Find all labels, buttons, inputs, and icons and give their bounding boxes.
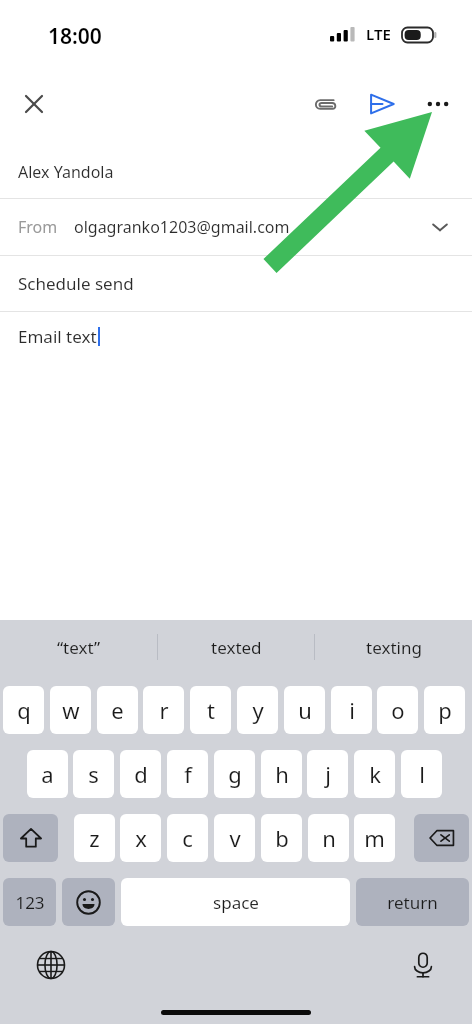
button[interactable]: r [143,686,184,734]
button[interactable]: texting [315,620,472,674]
staticText: olgagranko1203@gmail.com [74,216,290,238]
button[interactable]: i [331,686,372,734]
button[interactable]: Shift [3,814,58,862]
staticText: w [62,695,80,725]
staticText: v [229,823,241,853]
button[interactable]: x [120,814,161,862]
staticText: From [18,216,58,238]
staticText: m [364,823,385,853]
button[interactable]: p [424,686,465,734]
button[interactable]: b [261,814,302,862]
staticText: n [322,823,336,853]
button[interactable]: Change keyboard language [28,942,74,988]
staticText: b [275,823,289,853]
button[interactable]: v [214,814,255,862]
button[interactable]: n [308,814,349,862]
staticText: Alex Yandola [18,161,114,183]
staticText: h [275,759,289,789]
button[interactable]: space [121,878,350,926]
staticText: 123 [15,891,45,914]
staticText: t [207,695,215,725]
button[interactable]: g [214,750,255,798]
button[interactable]: return [356,878,469,926]
staticText: z [89,823,100,853]
button[interactable]: Send [360,82,404,126]
staticText: l [419,759,425,789]
button[interactable]: Expand sender [420,207,460,247]
staticText: i [349,695,355,725]
staticText: p [438,695,452,725]
staticText: g [228,759,242,789]
button[interactable]: t [190,686,231,734]
button[interactable]: o [377,686,418,734]
button[interactable]: Close [12,82,56,126]
button[interactable]: From [0,199,472,255]
staticText: u [298,695,312,725]
button[interactable]: Attach [303,82,347,126]
button[interactable]: Alex Yandola [0,145,472,198]
staticText: space [213,891,259,914]
staticText: k [369,759,381,789]
staticText: c [182,823,193,853]
button[interactable]: f [167,750,208,798]
button[interactable]: “text” [0,620,158,674]
button[interactable]: e [97,686,138,734]
button[interactable]: Dictation [400,942,446,988]
button[interactable]: z [74,814,115,862]
button[interactable]: 123 [3,878,56,926]
button[interactable]: s [73,750,114,798]
button[interactable]: Email text [18,325,99,348]
staticText: r [159,695,169,725]
staticText: return [387,891,438,914]
button[interactable]: Schedule send [0,256,472,311]
staticText: q [17,695,31,725]
button[interactable]: l [401,750,442,798]
staticText: e [111,695,124,725]
staticText: Email text [18,325,97,348]
button[interactable]: texted [158,620,315,674]
staticText: d [134,759,148,789]
staticText: o [391,695,405,725]
staticText: LTE [366,24,391,44]
button[interactable]: Backspace [414,814,469,862]
button[interactable]: y [237,686,278,734]
button[interactable]: u [284,686,325,734]
staticText: y [252,695,264,725]
staticText: texted [211,636,262,659]
staticText: x [135,823,147,853]
button[interactable]: h [261,750,302,798]
staticText: j [325,759,331,789]
button[interactable]: q [3,686,44,734]
staticText: Schedule send [18,272,134,295]
staticText: s [88,759,99,789]
button[interactable]: d [120,750,161,798]
staticText: f [184,759,192,789]
button[interactable]: w [50,686,91,734]
staticText: “text” [57,636,101,659]
button[interactable]: c [167,814,208,862]
button[interactable]: Emoji [62,878,115,926]
staticText: texting [366,636,422,659]
staticText: 18:00 [48,22,102,51]
button[interactable]: More options [416,82,460,126]
button[interactable]: m [354,814,395,862]
button[interactable]: a [27,750,68,798]
button[interactable]: j [307,750,348,798]
staticText: a [41,759,54,789]
button[interactable]: k [354,750,395,798]
